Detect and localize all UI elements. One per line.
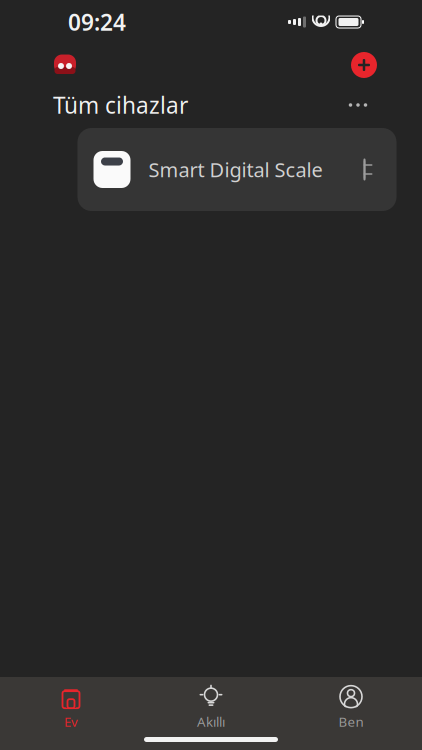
- button[interactable]: Smart Digital Scale: [77, 128, 396, 211]
- staticText: 09:24: [68, 7, 126, 37]
- staticText: Ben: [338, 713, 363, 730]
- button[interactable]: Ben: [281, 685, 421, 729]
- staticText: Tüm cihazlar: [53, 90, 188, 120]
- staticText: Akıllı: [197, 713, 225, 730]
- button[interactable]: Ev: [1, 685, 141, 729]
- button[interactable]: Akıllı: [141, 685, 281, 729]
- button[interactable]: Daha fazla: [336, 88, 380, 122]
- staticText: Ev: [64, 713, 78, 730]
- button[interactable]: Profil: [48, 48, 82, 82]
- button[interactable]: Cihaz ekle: [344, 45, 384, 85]
- staticText: Smart Digital Scale: [148, 156, 322, 183]
